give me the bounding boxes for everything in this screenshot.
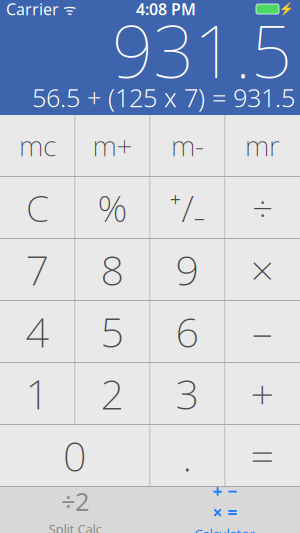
- staticText: + −: [212, 480, 237, 503]
- staticText: .: [182, 428, 192, 483]
- button[interactable]: 4: [0, 301, 74, 362]
- button[interactable]: mc: [0, 115, 74, 176]
- button[interactable]: ÷: [225, 177, 299, 238]
- button[interactable]: 0: [0, 425, 149, 486]
- staticText: 9: [175, 242, 199, 297]
- button[interactable]: 9: [150, 239, 224, 300]
- button[interactable]: ÷2: [0, 487, 150, 533]
- button[interactable]: m-: [150, 115, 224, 176]
- staticText: 931.5: [112, 2, 292, 98]
- staticText: mr: [245, 127, 280, 164]
- staticText: 8: [100, 242, 124, 297]
- button[interactable]: mr: [225, 115, 299, 176]
- button[interactable]: C: [0, 177, 74, 238]
- staticText: %: [97, 183, 127, 232]
- staticText: 56.5 + (125 x 7) = 931.5: [32, 81, 295, 114]
- staticText: +: [250, 366, 274, 421]
- staticText: 2: [100, 366, 124, 421]
- button[interactable]: 8: [75, 239, 149, 300]
- button[interactable]: ×: [225, 239, 299, 300]
- staticText: m+: [92, 127, 132, 164]
- button[interactable]: +: [225, 363, 299, 424]
- staticText: 3: [175, 366, 199, 421]
- staticText: m-: [171, 127, 204, 164]
- staticText: × =: [212, 501, 237, 524]
- staticText: 5: [100, 304, 124, 359]
- staticText: 7: [25, 242, 49, 297]
- staticText: ÷: [252, 183, 273, 232]
- button[interactable]: ⁺/₋: [150, 177, 224, 238]
- staticText: 4:08 PM: [136, 0, 196, 20]
- staticText: 4: [25, 304, 49, 359]
- staticText: 6: [175, 304, 199, 359]
- staticText: Calculator: [194, 525, 255, 533]
- staticText: Carrier: [6, 0, 59, 20]
- button[interactable]: 7: [0, 239, 74, 300]
- button[interactable]: + −: [150, 487, 300, 533]
- button[interactable]: =: [225, 425, 299, 486]
- button[interactable]: –: [225, 301, 299, 362]
- button[interactable]: %: [75, 177, 149, 238]
- staticText: 0: [63, 428, 87, 483]
- staticText: mc: [19, 127, 56, 164]
- staticText: =: [250, 428, 274, 483]
- button[interactable]: 3: [150, 363, 224, 424]
- staticText: C: [26, 183, 49, 232]
- button[interactable]: 5: [75, 301, 149, 362]
- button[interactable]: .: [150, 425, 224, 486]
- staticText: ᯤ: [59, 0, 76, 19]
- button[interactable]: m+: [75, 115, 149, 176]
- button[interactable]: 1: [0, 363, 74, 424]
- button[interactable]: 2: [75, 363, 149, 424]
- staticText: ⁺/₋: [169, 183, 205, 232]
- staticText: ÷2: [61, 484, 89, 518]
- staticText: –: [252, 304, 273, 359]
- button[interactable]: 6: [150, 301, 224, 362]
- staticText: ×: [250, 242, 274, 297]
- staticText: Split Calc: [48, 520, 101, 533]
- staticText: ⚡: [279, 2, 294, 16]
- staticText: 1: [25, 366, 49, 421]
